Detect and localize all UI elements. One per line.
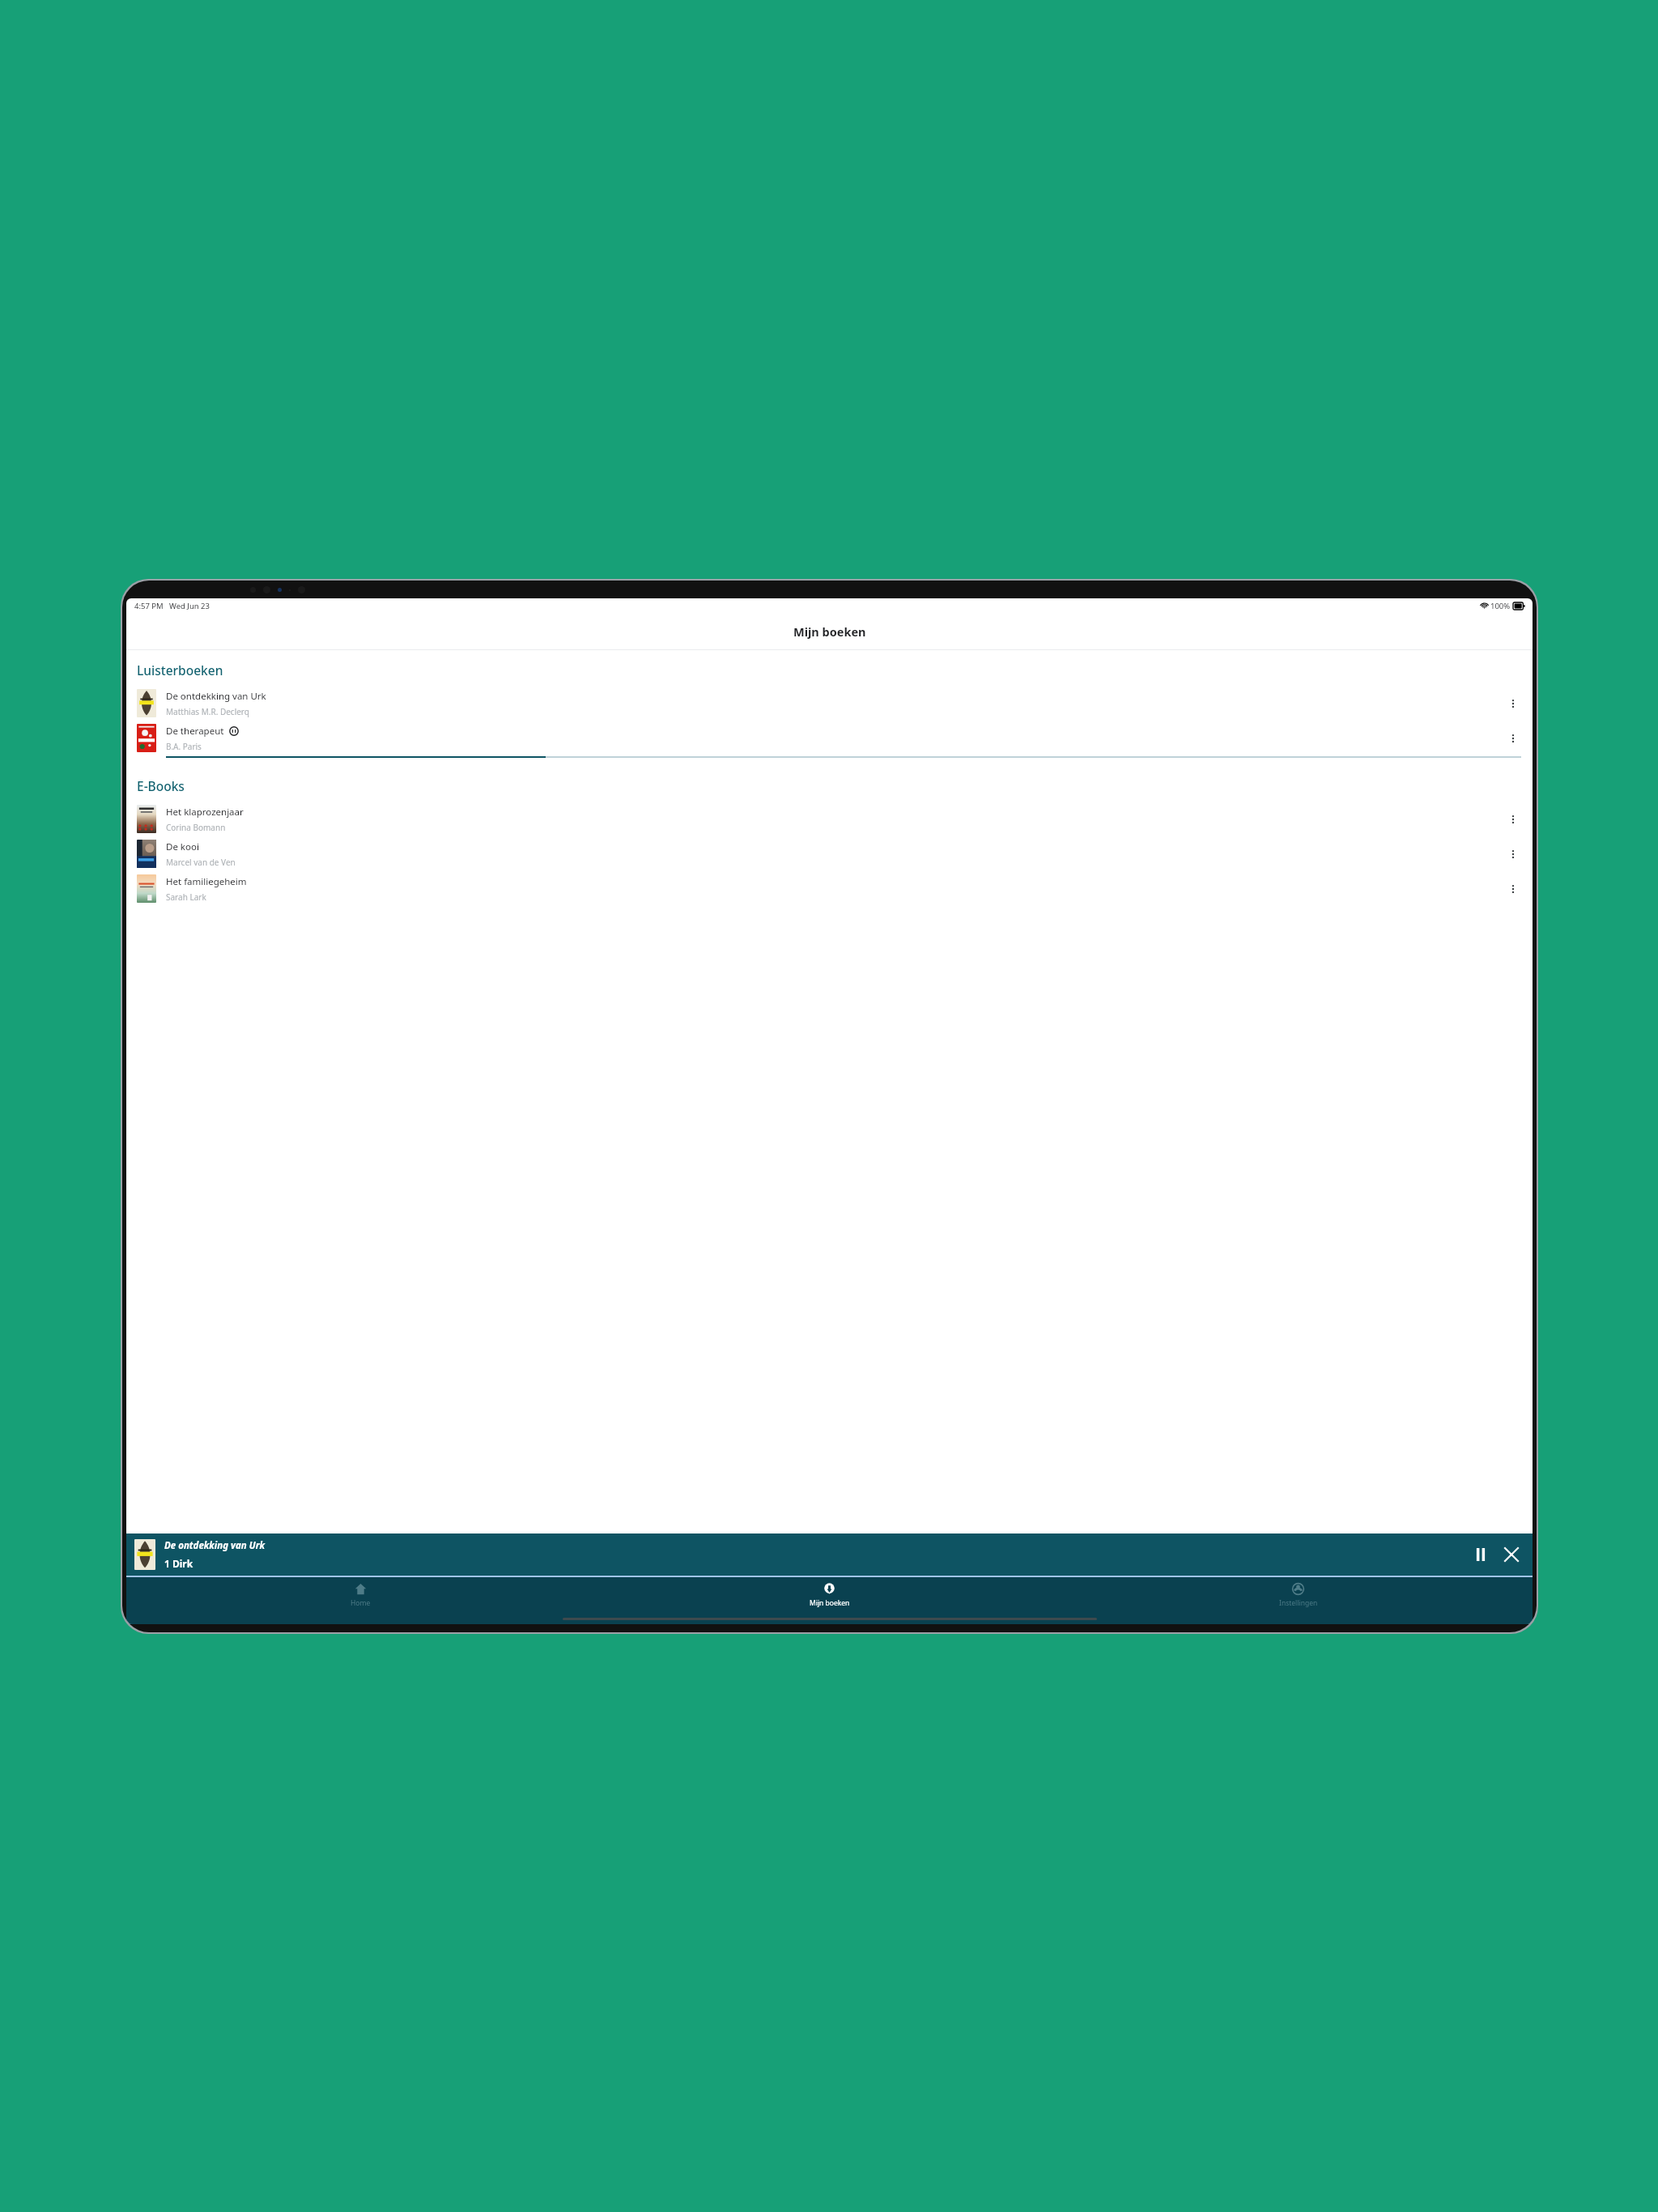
button[interactable]: Meer opties xyxy=(1502,808,1524,831)
button[interactable]: Het klaprozenjaar xyxy=(126,801,1533,836)
button[interactable]: Instellingen xyxy=(1064,1577,1533,1613)
staticText: E-Books xyxy=(137,777,185,794)
button[interactable]: De ontdekking van Urk xyxy=(126,685,1533,720)
button[interactable]: De kooi xyxy=(126,836,1533,870)
staticText: Mijn boeken xyxy=(810,1598,850,1608)
button[interactable]: Home xyxy=(126,1577,595,1613)
button[interactable]: Meer opties xyxy=(1502,727,1524,750)
staticText: 1 Dirk xyxy=(164,1557,193,1570)
staticText: Instellingen xyxy=(1279,1598,1318,1608)
button[interactable]: Meer opties xyxy=(1502,878,1524,900)
button[interactable]: Meer opties xyxy=(1502,692,1524,715)
staticText: Sarah Lark xyxy=(166,891,206,903)
staticText: Het klaprozenjaar xyxy=(166,806,244,819)
button[interactable]: Sluiten xyxy=(1499,1542,1524,1568)
button[interactable]: Meer opties xyxy=(1502,843,1524,866)
staticText: De therapeut xyxy=(166,725,224,738)
staticText: De kooi xyxy=(166,840,199,853)
staticText: De ontdekking van Urk xyxy=(166,690,266,703)
staticText: Corina Bomann xyxy=(166,822,226,833)
button[interactable]: Mijn boeken xyxy=(595,1577,1064,1613)
button[interactable]: De therapeut xyxy=(126,720,1533,758)
staticText: Mijn boeken xyxy=(793,623,866,640)
staticText: B.A. Paris xyxy=(166,741,202,752)
staticText: Het familiegeheim xyxy=(166,875,247,888)
staticText: 4:57 PM xyxy=(134,601,164,611)
staticText: Wed Jun 23 xyxy=(169,601,210,611)
button[interactable]: Pauzeren xyxy=(1468,1542,1494,1568)
staticText: De ontdekking van Urk xyxy=(164,1539,266,1552)
staticText: Marcel van de Ven xyxy=(166,857,236,868)
button[interactable]: Het familiegeheim xyxy=(126,870,1533,905)
staticText: Luisterboeken xyxy=(137,661,223,678)
staticText: 100% xyxy=(1490,601,1511,611)
button[interactable]: De ontdekking van Urk xyxy=(126,1534,1533,1576)
staticText: Home xyxy=(351,1598,371,1608)
staticText: Matthias M.R. Declerq xyxy=(166,706,249,717)
